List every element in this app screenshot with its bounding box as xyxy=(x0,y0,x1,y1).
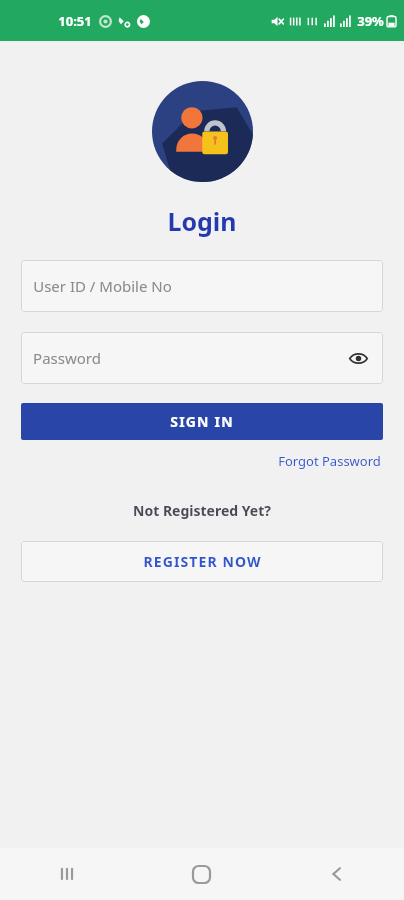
button[interactable]: Show password xyxy=(347,347,369,369)
button[interactable]: Back xyxy=(269,848,404,900)
button[interactable]: Home xyxy=(134,848,269,900)
button[interactable]: User ID / Mobile No xyxy=(21,260,383,312)
staticText: REGISTER NOW xyxy=(143,552,262,571)
staticText: Forgot Password xyxy=(278,452,381,470)
button[interactable]: Forgot Password xyxy=(276,450,383,472)
button[interactable]: REGISTER NOW xyxy=(21,541,383,582)
button[interactable]: SIGN IN xyxy=(21,403,383,440)
staticText: Password xyxy=(33,348,101,368)
button[interactable]: Password xyxy=(21,332,383,384)
staticText: 39% xyxy=(357,12,384,30)
staticText: SIGN IN xyxy=(170,412,234,431)
staticText: 10:51 xyxy=(58,12,92,30)
staticText: Not Registered Yet? xyxy=(133,501,271,520)
staticText: Login xyxy=(167,204,237,238)
button[interactable]: Recent apps xyxy=(0,848,134,900)
staticText: User ID / Mobile No xyxy=(33,276,172,296)
